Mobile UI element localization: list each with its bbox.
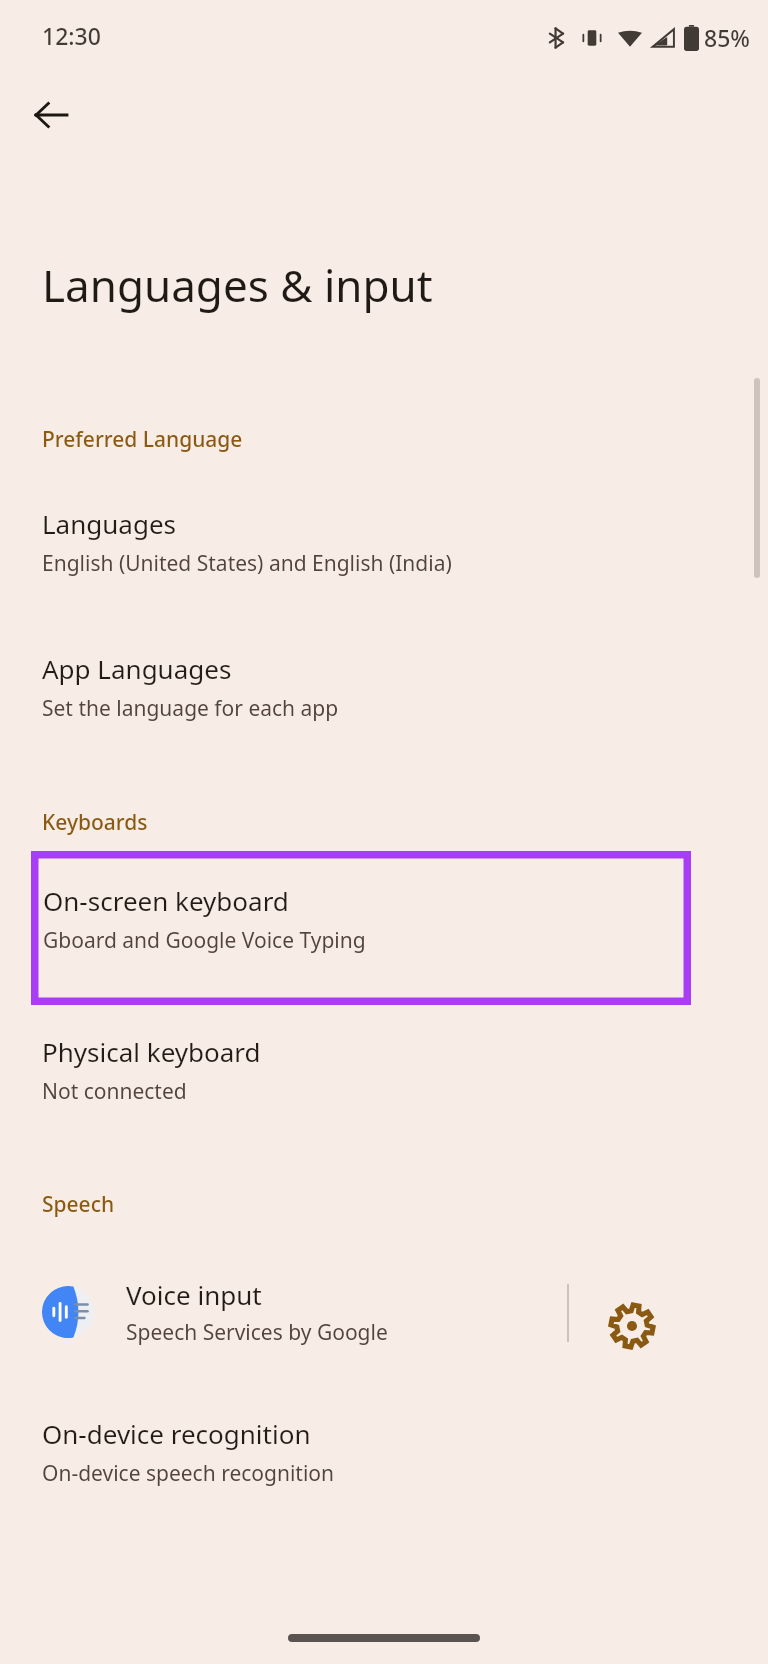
button[interactable]: Physical keyboard [0,1028,768,1112]
staticText: Voice input [126,1277,262,1312]
staticText: 12:30 [42,20,101,51]
staticText: Physical keyboard [42,1034,261,1069]
button[interactable]: On-screen keyboard [31,851,691,1005]
button[interactable]: Back [18,82,84,148]
staticText: Preferred Language [42,425,243,454]
staticText: Keyboards [42,808,148,837]
button[interactable]: Voice input [0,1262,568,1362]
staticText: Languages & input [42,255,433,315]
staticText: Not connected [42,1077,187,1106]
staticText: 85% [704,22,750,53]
staticText: On-device recognition [42,1416,311,1451]
staticText: Set the language for each app [42,694,339,723]
staticText: Speech [42,1190,115,1219]
staticText: App Languages [42,651,232,686]
staticText: English (United States) and English (Ind… [42,549,452,578]
staticText: Speech Services by Google [126,1318,388,1347]
staticText: Languages [42,506,177,541]
staticText: On-device speech recognition [42,1459,335,1488]
button[interactable]: App Languages [0,645,768,729]
staticText: Gboard and Google Voice Typing [43,926,366,955]
button[interactable]: Voice input settings [596,1290,668,1362]
button[interactable]: Languages [0,500,768,584]
button[interactable]: On-device recognition [0,1410,768,1494]
staticText: On-screen keyboard [43,883,289,918]
